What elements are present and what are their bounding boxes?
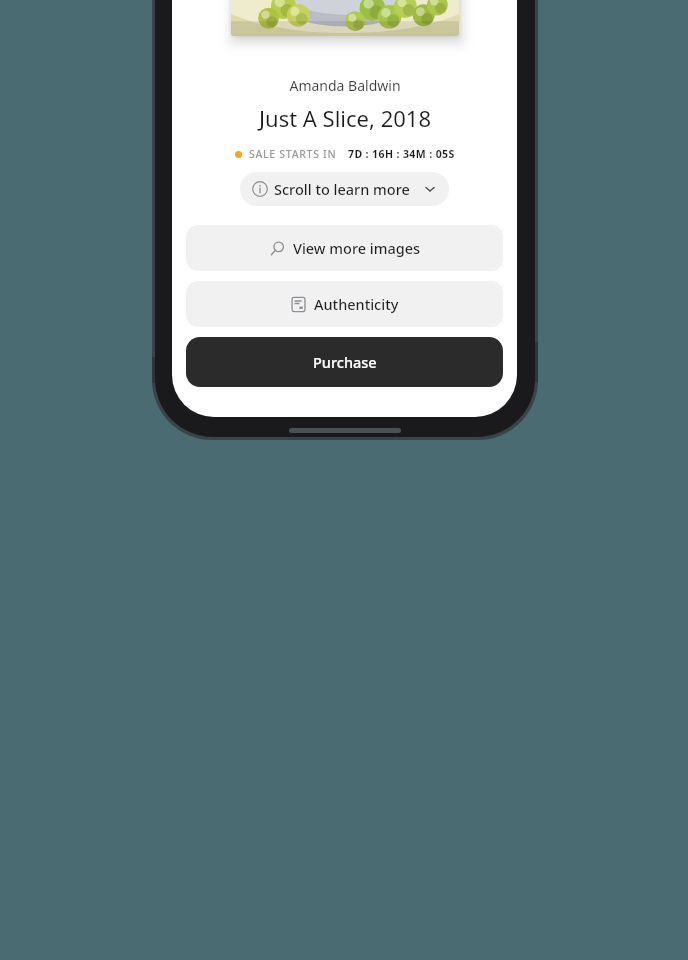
button[interactable]: Scroll to learn more <box>240 172 449 206</box>
staticText: Scroll to learn more <box>274 179 410 199</box>
staticText: View more images <box>293 238 421 258</box>
staticText: Authenticity <box>314 294 399 314</box>
staticText: SALE STARTS IN <box>249 147 337 161</box>
staticText: Just A Slice, 2018 <box>259 103 431 133</box>
button[interactable]: View more images <box>186 225 503 271</box>
staticText: Amanda Baldwin <box>289 76 401 95</box>
button[interactable]: Authenticity <box>186 281 503 327</box>
staticText: Purchase <box>313 352 377 372</box>
button[interactable]: Purchase <box>186 337 503 387</box>
staticText: 7D : 16H : 34M : 05S <box>348 147 455 161</box>
